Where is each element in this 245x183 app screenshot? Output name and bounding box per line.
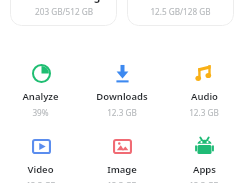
staticText: 12.3 GB: [107, 107, 137, 118]
staticText: Downloads: [96, 90, 148, 103]
staticText: Video: [27, 163, 54, 176]
staticText: Apps: [193, 163, 216, 176]
staticText: Analyze: [22, 90, 59, 103]
button[interactable]: Audio: [163, 57, 245, 118]
staticText: Audio: [191, 90, 218, 103]
button[interactable]: Downloads: [81, 57, 163, 118]
button[interactable]: Video: [0, 130, 81, 183]
staticText: 12.3 GB: [189, 107, 219, 118]
button[interactable]: Apps: [163, 130, 245, 183]
button[interactable]: SD card: [127, 0, 234, 26]
button[interactable]: Internal storage: [10, 0, 117, 26]
button[interactable]: Image: [81, 130, 163, 183]
button[interactable]: Analyze storage: [0, 57, 81, 118]
staticText: 39%: [32, 107, 49, 118]
staticText: 203 GB/512 GB: [35, 6, 93, 17]
staticText: Internal storage: [21, 0, 107, 3]
staticText: 12.3 GB: [189, 180, 219, 183]
staticText: 12.3 GB: [107, 180, 137, 183]
staticText: 12.3 GB: [26, 180, 56, 183]
staticText: Image: [107, 163, 137, 176]
staticText: 12.5 GB/128 GB: [150, 6, 211, 17]
